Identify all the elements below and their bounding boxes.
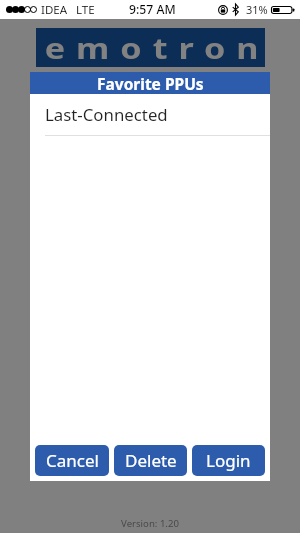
staticText: Last-Connected [45, 103, 168, 126]
other: Signal strength [6, 6, 37, 13]
staticText: IDEA [41, 2, 68, 18]
staticText: Delete [125, 449, 177, 472]
button[interactable]: Last-Connected [30, 94, 270, 135]
other: Bluetooth [232, 4, 239, 15]
staticText: Cancel [46, 449, 99, 472]
staticText: Version: 1.20 [0, 517, 300, 530]
staticText: 9:57 AM [129, 1, 176, 18]
staticText: emotron [45, 29, 270, 67]
staticText: 31% [246, 2, 268, 17]
staticText: Favorite PPUs [97, 73, 204, 94]
staticText: LTE [76, 2, 95, 18]
button[interactable]: Login [192, 445, 265, 476]
staticText: Login [206, 449, 251, 472]
other: Battery 31 percent [271, 6, 295, 14]
button[interactable]: emotron [36, 28, 265, 67]
button[interactable]: Delete [114, 445, 187, 476]
button[interactable]: Cancel [35, 445, 109, 476]
other: Rotation lock [218, 5, 228, 15]
